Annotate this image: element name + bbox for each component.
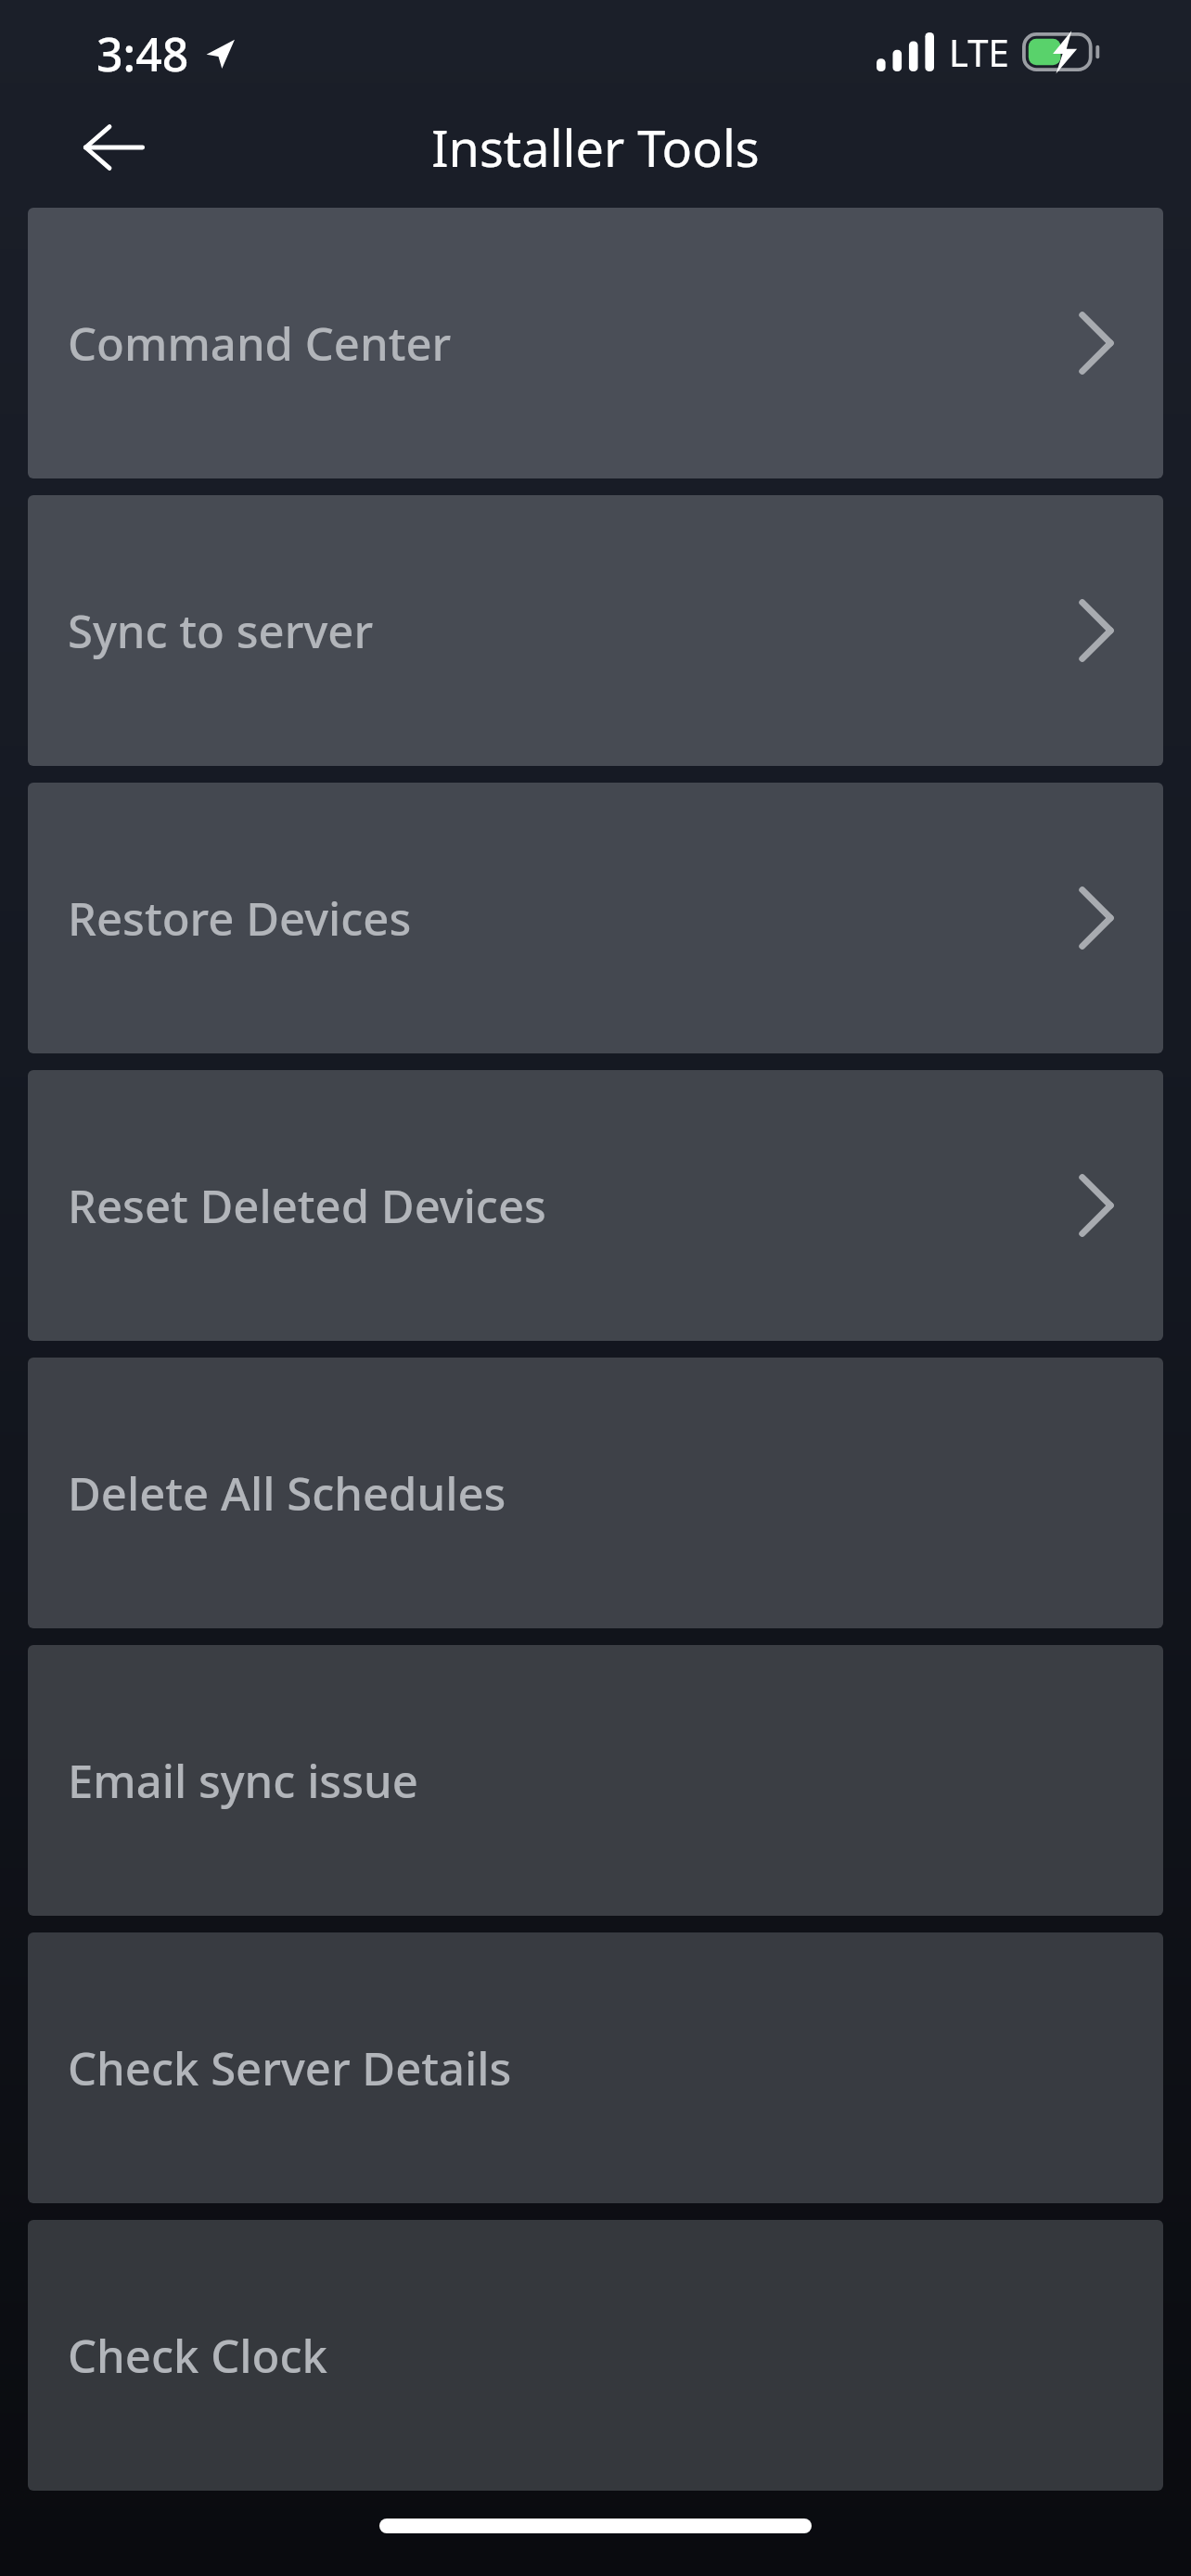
staticText: Restore Devices <box>68 887 412 950</box>
staticText: Installer Tools <box>431 113 760 182</box>
staticText: Check Server Details <box>68 2037 512 2099</box>
button[interactable]: Sync to server <box>28 495 1163 766</box>
button[interactable]: Delete All Schedules <box>28 1358 1163 1628</box>
button[interactable]: Check Clock <box>28 2220 1163 2491</box>
staticText: Reset Deleted Devices <box>68 1175 546 1237</box>
button[interactable]: Back <box>72 107 154 188</box>
button[interactable]: Check Server Details <box>28 1932 1163 2203</box>
button[interactable]: Restore Devices <box>28 783 1163 1053</box>
button[interactable]: Command Center <box>28 208 1163 478</box>
button[interactable]: Email sync issue <box>28 1645 1163 1916</box>
staticText: Delete All Schedules <box>68 1462 506 1524</box>
staticText: Command Center <box>68 312 452 375</box>
staticText: 3:48 <box>96 22 189 85</box>
button[interactable]: Reset Deleted Devices <box>28 1070 1163 1341</box>
staticText: LTE <box>949 27 1009 77</box>
staticText: Sync to server <box>68 600 374 662</box>
staticText: Email sync issue <box>68 1750 418 1812</box>
staticText: Check Clock <box>68 2325 327 2387</box>
